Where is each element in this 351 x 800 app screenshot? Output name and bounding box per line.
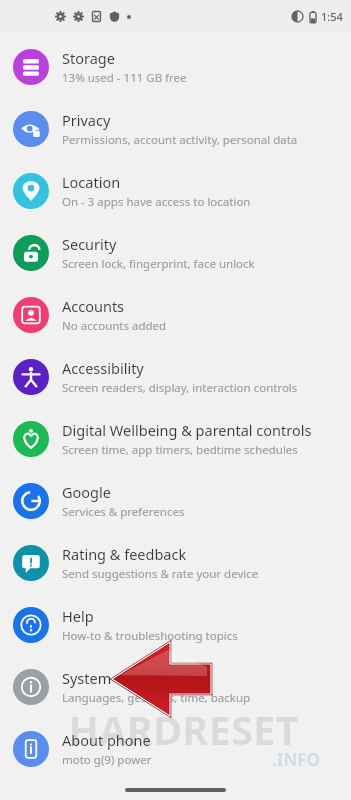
staticText: Help (62, 606, 94, 626)
staticText: 1:54 (321, 9, 343, 24)
staticText: Storage (62, 48, 115, 68)
staticText: Send suggestions & rate your device (62, 566, 259, 582)
staticText: Languages, gestures, time, backup (62, 690, 251, 706)
staticText: About phone (62, 730, 151, 750)
button[interactable]: Storage (0, 36, 351, 98)
staticText: .INFO (272, 748, 320, 771)
staticText: moto g(9) power (62, 752, 152, 768)
button[interactable]: Security (0, 222, 351, 284)
staticText: On - 3 apps have access to location (62, 194, 251, 210)
staticText: Security (62, 234, 117, 254)
button[interactable]: About phone (0, 718, 351, 780)
staticText: Screen lock, fingerprint, face unlock (62, 256, 255, 272)
staticText: Permissions, account activity, personal … (62, 132, 298, 148)
button[interactable]: Help (0, 594, 351, 656)
staticText: Screen time, app timers, bedtime schedul… (62, 442, 298, 458)
staticText: Services & preferences (62, 504, 185, 520)
button[interactable]: Accounts (0, 284, 351, 346)
button[interactable]: Accessibility (0, 346, 351, 408)
button[interactable]: System (0, 656, 351, 718)
staticText: Screen readers, display, interaction con… (62, 380, 298, 396)
button[interactable]: Google (0, 470, 351, 532)
staticText: Digital Wellbeing & parental controls (62, 420, 312, 440)
staticText: No accounts added (62, 318, 167, 334)
staticText: Location (62, 172, 121, 192)
staticText: System (62, 668, 112, 688)
staticText: Google (62, 482, 111, 502)
button[interactable]: Rating & feedback (0, 532, 351, 594)
button[interactable]: Privacy (0, 98, 351, 160)
staticText: Rating & feedback (62, 544, 187, 564)
button[interactable]: Digital Wellbeing & parental controls (0, 408, 351, 470)
button[interactable]: Location (0, 160, 351, 222)
staticText: Accounts (62, 296, 125, 316)
staticText: HARDRESET (8, 702, 351, 756)
staticText: How-to & troubleshooting topics (62, 628, 238, 644)
staticText: Privacy (62, 110, 111, 130)
staticText: Accessibility (62, 358, 144, 378)
staticText: 13% used - 111 GB free (62, 70, 187, 86)
